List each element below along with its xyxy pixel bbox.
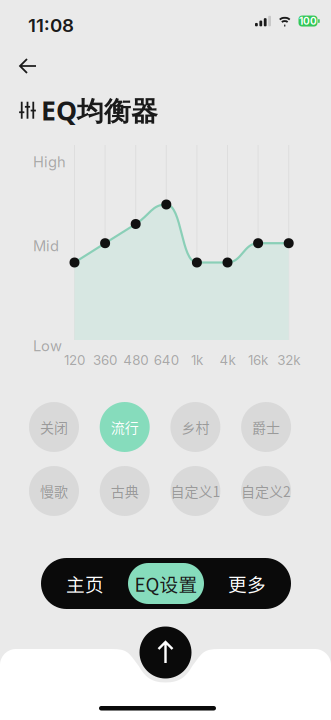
staticText: 640 (154, 352, 179, 368)
staticText: 120 (64, 352, 85, 368)
button[interactable]: EQ设置 (128, 563, 204, 604)
button[interactable]: 乡村 (170, 402, 220, 452)
staticText: 11:08 (28, 14, 74, 37)
button[interactable]: 流行 (100, 402, 150, 452)
staticText: 自定义1 (170, 481, 220, 501)
staticText: 古典 (111, 481, 139, 501)
button[interactable]: 古典 (100, 466, 150, 516)
staticText: 关闭 (40, 417, 68, 437)
staticText: 流行 (111, 417, 139, 437)
staticText: 480 (123, 352, 148, 368)
staticText: 16k (248, 352, 268, 368)
button[interactable]: 爵士 (241, 402, 291, 452)
staticText: 32k (277, 352, 300, 368)
staticText: 主页 (66, 570, 104, 597)
button[interactable]: 自定义1 (170, 466, 220, 516)
button[interactable]: 关闭 (29, 402, 79, 452)
staticText: 更多 (228, 570, 266, 597)
button[interactable]: 自定义2 (241, 466, 291, 516)
staticText: 100 (299, 15, 317, 27)
staticText: 4k (219, 352, 235, 368)
staticText: 1k (191, 352, 203, 368)
button[interactable]: 更多 (204, 558, 290, 609)
button[interactable]: 慢歌 (29, 466, 79, 516)
button[interactable]: 主页 (42, 558, 128, 609)
staticText: EQ设置 (134, 570, 197, 597)
staticText: 慢歌 (40, 481, 68, 501)
staticText: 360 (93, 352, 117, 368)
staticText: 自定义2 (241, 481, 291, 501)
staticText: Low (33, 337, 62, 355)
button[interactable]: Back (10, 48, 46, 84)
staticText: High (33, 153, 66, 171)
staticText: EQ均衡器 (41, 92, 158, 128)
staticText: 乡村 (181, 417, 209, 437)
staticText: Mid (33, 237, 59, 255)
staticText: 爵士 (252, 417, 280, 437)
button[interactable]: Scroll to top (139, 626, 191, 678)
